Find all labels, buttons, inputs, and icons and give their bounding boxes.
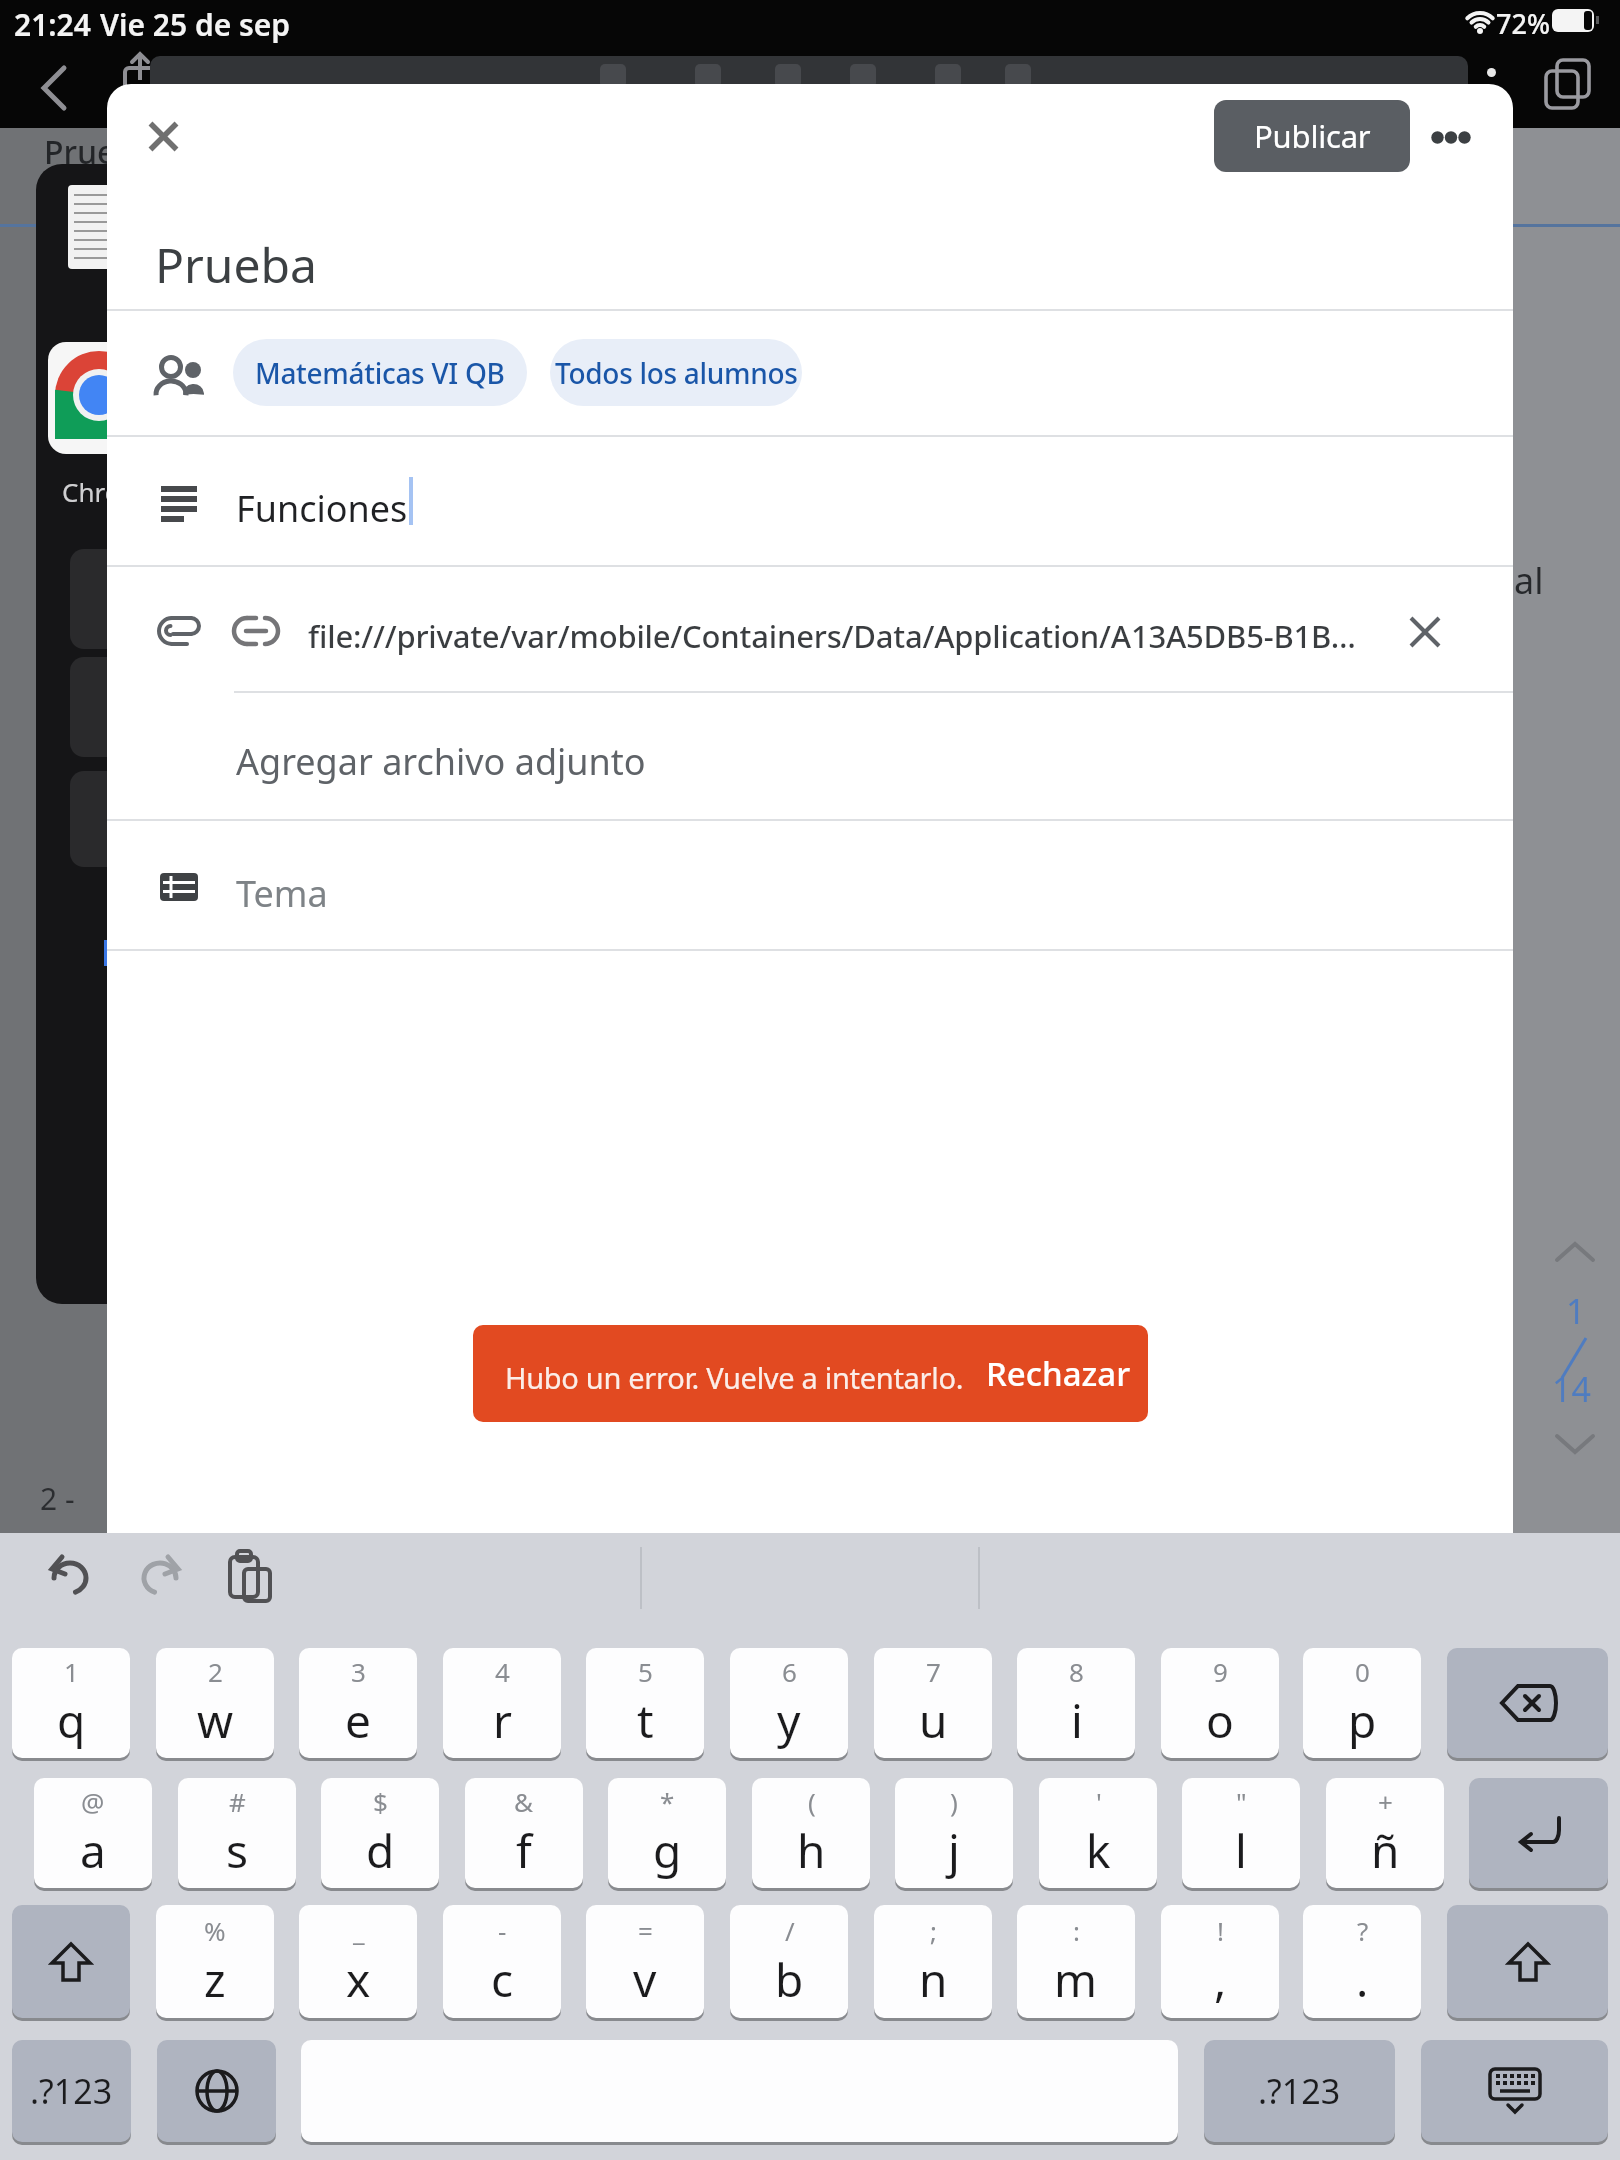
staticText: Todos los alumnos xyxy=(555,354,798,392)
staticText: r xyxy=(493,1689,512,1752)
button[interactable]: 8 xyxy=(1017,1648,1135,1758)
staticText: + xyxy=(1378,1784,1393,1819)
staticText: p xyxy=(1348,1689,1377,1752)
button[interactable] xyxy=(124,1543,194,1607)
staticText: 14 xyxy=(1552,1366,1591,1412)
button[interactable]: # xyxy=(178,1778,296,1888)
button[interactable]: .?123 xyxy=(12,2040,131,2142)
button[interactable]: / xyxy=(730,1905,848,2018)
staticText: ' xyxy=(1096,1784,1102,1819)
button[interactable]: + xyxy=(1326,1778,1444,1888)
staticText: o xyxy=(1206,1689,1234,1752)
staticText: k xyxy=(1086,1819,1111,1882)
button[interactable]: ( xyxy=(752,1778,870,1888)
staticText: i xyxy=(1071,1689,1083,1752)
button[interactable] xyxy=(1423,119,1479,155)
staticText: 3 xyxy=(351,1654,366,1689)
staticText: file:///private/var/mobile/Containers/Da… xyxy=(308,615,1378,657)
button[interactable]: 4 xyxy=(443,1648,561,1758)
button[interactable]: Todos los alumnos xyxy=(550,339,802,406)
staticText: .?123 xyxy=(30,2068,113,2114)
staticText: f xyxy=(516,1819,532,1882)
staticText: @ xyxy=(81,1784,105,1819)
button[interactable]: 6 xyxy=(730,1648,848,1758)
staticText: Prueba xyxy=(155,232,318,297)
button[interactable]: - xyxy=(443,1905,561,2018)
staticText: 2 xyxy=(208,1654,223,1689)
button[interactable]: ' xyxy=(1039,1778,1157,1888)
button[interactable]: ; xyxy=(874,1905,992,2018)
staticText: Tema xyxy=(236,869,328,918)
button[interactable]: 3 xyxy=(299,1648,417,1758)
button[interactable]: 0 xyxy=(1303,1648,1421,1758)
staticText: x xyxy=(346,1948,371,2011)
staticText: Agregar archivo adjunto xyxy=(236,737,646,786)
button[interactable]: Rechazar xyxy=(968,1325,1148,1422)
staticText: j xyxy=(948,1819,960,1882)
button[interactable]: $ xyxy=(321,1778,439,1888)
button[interactable] xyxy=(30,56,80,116)
staticText: = xyxy=(638,1913,653,1948)
button[interactable]: 5 xyxy=(586,1648,704,1758)
button[interactable]: @ xyxy=(34,1778,152,1888)
staticText: a xyxy=(80,1819,106,1882)
staticText: 7 xyxy=(926,1654,941,1689)
button[interactable]: 9 xyxy=(1161,1648,1279,1758)
button[interactable]: Matemáticas VI QB xyxy=(233,339,527,406)
button[interactable] xyxy=(133,106,193,166)
button[interactable] xyxy=(216,1543,286,1607)
button[interactable]: 1 xyxy=(12,1648,130,1758)
staticText: Hubo un error. Vuelve a intentarlo. xyxy=(505,1358,964,1397)
button[interactable]: ) xyxy=(895,1778,1013,1888)
staticText: d xyxy=(366,1819,395,1882)
staticText: 0 xyxy=(1355,1654,1370,1689)
button[interactable] xyxy=(107,821,1513,949)
button[interactable]: 2 xyxy=(156,1648,274,1758)
button[interactable]: 7 xyxy=(874,1648,992,1758)
button[interactable]: * xyxy=(608,1778,726,1888)
button[interactable] xyxy=(107,693,1513,819)
button[interactable]: .?123 xyxy=(1204,2040,1395,2142)
button[interactable] xyxy=(1447,1905,1608,2018)
button[interactable]: & xyxy=(465,1778,583,1888)
staticText: - xyxy=(498,1913,507,1948)
staticText: , xyxy=(1214,1948,1227,2011)
button[interactable]: = xyxy=(586,1905,704,2018)
button[interactable]: ! xyxy=(1161,1905,1279,2018)
staticText: Rechazar xyxy=(986,1351,1131,1396)
staticText: # xyxy=(229,1784,246,1819)
staticText: .?123 xyxy=(1258,2068,1341,2114)
button[interactable] xyxy=(1421,2040,1608,2142)
staticText: y xyxy=(777,1689,801,1752)
button[interactable]: Publicar xyxy=(1214,100,1410,172)
staticText: * xyxy=(660,1784,675,1819)
staticText: " xyxy=(1236,1784,1247,1819)
staticText: 2 - xyxy=(40,1478,75,1519)
button[interactable]: _ xyxy=(299,1905,417,2018)
button[interactable]: " xyxy=(1182,1778,1300,1888)
button[interactable] xyxy=(107,567,1397,691)
button[interactable] xyxy=(12,1905,130,2018)
staticText: $ xyxy=(373,1784,388,1819)
button[interactable] xyxy=(1469,1778,1608,1888)
button[interactable] xyxy=(1403,610,1447,654)
staticText: % xyxy=(204,1913,226,1948)
button[interactable]: : xyxy=(1017,1905,1135,2018)
staticText: Chro xyxy=(62,474,121,509)
staticText: Matemáticas VI QB xyxy=(255,354,505,392)
staticText: / xyxy=(785,1913,795,1948)
button[interactable] xyxy=(36,1543,106,1607)
button[interactable] xyxy=(107,311,1513,435)
staticText: : xyxy=(1073,1913,1080,1948)
button[interactable] xyxy=(1447,1648,1608,1758)
staticText: h xyxy=(797,1819,826,1882)
button[interactable] xyxy=(107,437,1513,565)
staticText: e xyxy=(345,1689,371,1752)
staticText: Prueba xyxy=(44,130,154,174)
staticText: ) xyxy=(950,1784,958,1819)
button[interactable]: % xyxy=(156,1905,274,2018)
button[interactable] xyxy=(157,2040,276,2142)
staticText: 5 xyxy=(638,1654,653,1689)
button[interactable]: ? xyxy=(1303,1905,1421,2018)
